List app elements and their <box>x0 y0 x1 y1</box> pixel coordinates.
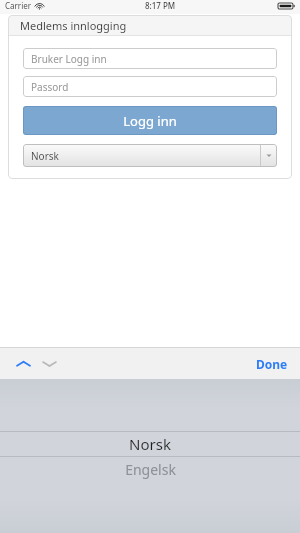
staticText: Bruker Logg inn <box>31 52 107 66</box>
button[interactable]: Norsk <box>0 431 300 457</box>
button[interactable]: Done <box>246 350 298 378</box>
button[interactable]: Logg inn <box>23 106 277 135</box>
staticText: Norsk <box>31 149 59 163</box>
button[interactable]: Bruker Logg inn <box>23 48 277 69</box>
button[interactable]: Engelsk <box>0 457 300 481</box>
staticText: Logg inn <box>123 112 177 130</box>
staticText: Engelsk <box>125 460 176 479</box>
staticText: Done <box>256 356 288 372</box>
staticText: Norsk <box>129 434 171 454</box>
button[interactable]: Next field <box>37 352 61 376</box>
staticText: Passord <box>31 80 69 94</box>
staticText: 8:17 PM <box>145 0 176 11</box>
staticText: Medlems innlogging <box>20 18 127 33</box>
staticText: Carrier <box>5 0 32 11</box>
button[interactable]: Norsk <box>23 144 277 167</box>
button[interactable]: Previous field <box>11 352 35 376</box>
button[interactable]: Passord <box>23 76 277 97</box>
